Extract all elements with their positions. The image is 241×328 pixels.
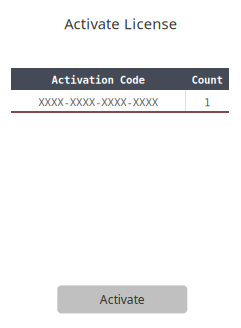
staticText: Count [192,74,222,86]
staticText: XXXX-XXXX-XXXX-XXXX [38,96,158,109]
staticText: Activation Code [52,74,144,86]
staticText: Activate [100,291,145,307]
staticText: 1 [204,96,210,109]
staticText: Activate License [64,13,177,33]
button[interactable]: Activate [57,285,187,313]
